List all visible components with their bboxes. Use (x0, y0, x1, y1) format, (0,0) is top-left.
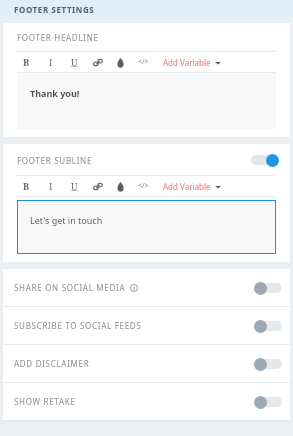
staticText: I (49, 180, 53, 192)
button[interactable]: </> (138, 57, 149, 67)
button[interactable]: ADD DISCLAIMER (3, 345, 290, 382)
button[interactable]: Text color (115, 181, 126, 192)
button[interactable]: Add Variable (163, 57, 221, 68)
button[interactable]: Text color (115, 57, 126, 68)
staticText: U (71, 180, 78, 192)
button[interactable]: Insert link (92, 181, 103, 192)
button[interactable]: Toggle SHARE ON SOCIAL MEDIA (254, 281, 282, 295)
button[interactable]: Toggle SHOW RETAKE (254, 395, 282, 409)
staticText: I (49, 56, 53, 68)
staticText: ADD DISCLAIMER (14, 358, 90, 369)
staticText: Add Variable (163, 57, 211, 68)
button[interactable]: SHOW RETAKE (3, 383, 290, 420)
staticText: Add Variable (163, 181, 211, 192)
button[interactable]: Add Variable (163, 181, 221, 192)
button[interactable]: Bold (21, 179, 32, 193)
button[interactable]: Bold (21, 55, 32, 69)
button[interactable]: Toggle FOOTER SUBLINE (251, 153, 279, 167)
button[interactable]: Toggle ADD DISCLAIMER (254, 357, 282, 371)
staticText: FOOTER HEADLINE (17, 32, 99, 43)
staticText: SHARE ON SOCIAL MEDIA (14, 282, 126, 293)
button[interactable]: </> (138, 181, 149, 191)
staticText: Let's get in touch (30, 214, 103, 226)
staticText: Thank you! (30, 87, 80, 99)
button[interactable]: Insert link (92, 57, 103, 68)
button[interactable]: Underline (69, 179, 80, 193)
button[interactable]: More info (130, 284, 138, 292)
button[interactable]: SUBSCRIBE TO SOCIAL FEEDS (3, 307, 290, 344)
button[interactable]: Italic (45, 179, 56, 193)
staticText: FOOTER SUBLINE (17, 155, 93, 166)
button[interactable]: SHARE ON SOCIAL MEDIA (3, 269, 290, 306)
button[interactable]: Underline (69, 55, 80, 69)
button[interactable]: Italic (45, 55, 56, 69)
staticText: B (23, 56, 30, 68)
staticText: U (71, 56, 78, 68)
staticText: SUBSCRIBE TO SOCIAL FEEDS (14, 320, 142, 331)
button[interactable]: Toggle SUBSCRIBE TO SOCIAL FEEDS (254, 319, 282, 333)
staticText: SHOW RETAKE (14, 396, 76, 407)
staticText: B (23, 180, 30, 192)
staticText: FOOTER SETTINGS (14, 4, 95, 15)
